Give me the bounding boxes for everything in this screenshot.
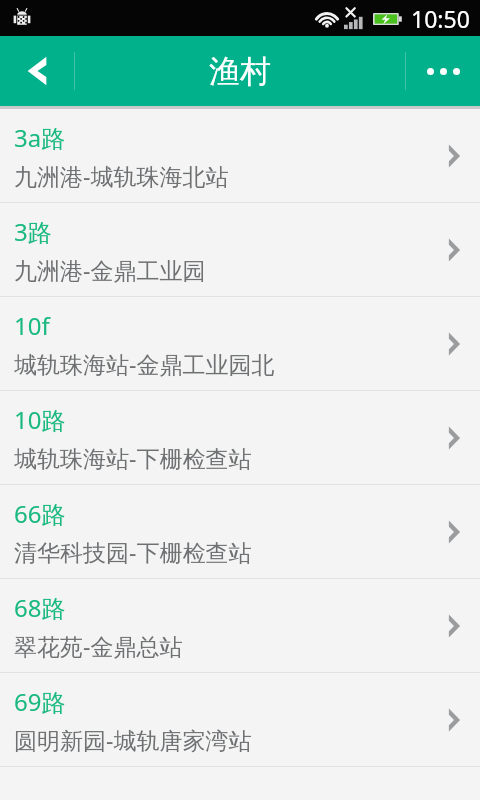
button[interactable]: 3a路	[0, 109, 480, 202]
staticText: 69路	[14, 685, 66, 718]
staticText: 城轨珠海站-下栅检查站	[14, 442, 252, 473]
staticText: 10f	[14, 309, 50, 342]
staticText: 3a路	[14, 121, 66, 154]
staticText: 10路	[14, 403, 66, 436]
staticText: 渔村	[209, 52, 271, 91]
button[interactable]: Back	[0, 36, 74, 106]
staticText: 66路	[14, 497, 66, 530]
button[interactable]: 10路	[0, 391, 480, 484]
staticText: 清华科技园-下栅检查站	[14, 536, 252, 567]
staticText: 九洲港-城轨珠海北站	[14, 160, 229, 191]
button[interactable]: 3路	[0, 203, 480, 296]
staticText: 圆明新园-城轨唐家湾站	[14, 724, 252, 755]
button[interactable]: More options	[406, 36, 480, 106]
staticText: 3路	[14, 215, 52, 248]
staticText: 翠花苑-金鼎总站	[14, 630, 183, 661]
staticText: 城轨珠海站-金鼎工业园北	[14, 348, 275, 379]
button[interactable]: 68路	[0, 579, 480, 672]
button[interactable]: 10f	[0, 297, 480, 390]
staticText: 九洲港-金鼎工业园	[14, 254, 206, 285]
button[interactable]: 66路	[0, 485, 480, 578]
staticText: 68路	[14, 591, 66, 624]
button[interactable]: 69路	[0, 673, 480, 766]
staticText: 10:50	[411, 3, 470, 34]
